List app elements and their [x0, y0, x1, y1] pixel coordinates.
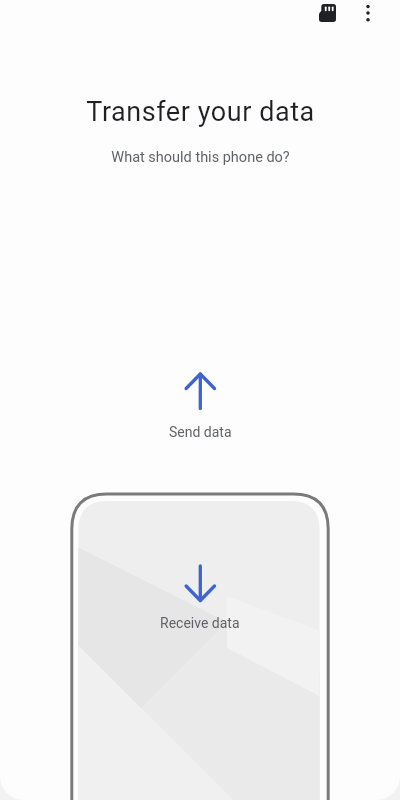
staticText: Send data: [169, 424, 232, 440]
staticText: Receive data: [160, 615, 240, 631]
staticText: Transfer your data: [86, 96, 315, 128]
button[interactable]: Send data: [0, 424, 400, 440]
button[interactable]: SD card: [302, 0, 346, 25]
button[interactable]: More options: [346, 0, 390, 25]
button[interactable]: Receive data on this phone: [0, 0, 400, 800]
button[interactable]: Receive data: [0, 615, 400, 631]
staticText: What should this phone do?: [111, 149, 290, 166]
